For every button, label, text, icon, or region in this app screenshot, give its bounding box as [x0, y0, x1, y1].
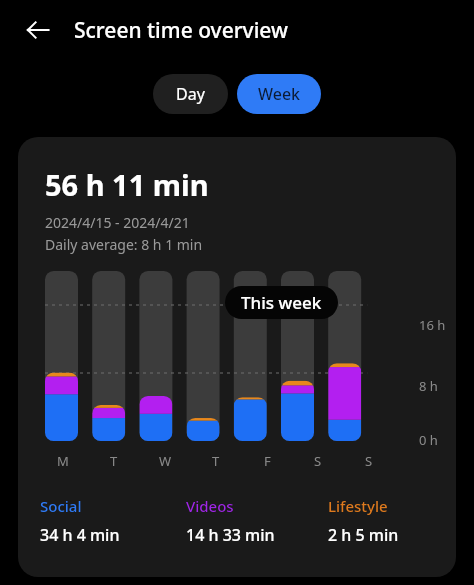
staticText: W: [159, 452, 172, 470]
staticText: 8 h: [419, 377, 438, 395]
staticText: S: [314, 452, 322, 470]
staticText: Daily average: 8 h 1 min: [45, 235, 203, 254]
staticText: F: [264, 452, 271, 470]
staticText: T: [212, 452, 220, 470]
staticText: S: [365, 452, 373, 470]
staticText: Screen time overview: [74, 16, 288, 45]
button[interactable]: Day: [153, 74, 228, 114]
staticText: 2 h 5 min: [328, 524, 399, 546]
button[interactable]: Week: [237, 74, 321, 114]
staticText: Week: [258, 83, 301, 105]
button[interactable]: Lifestyle: [328, 496, 448, 546]
staticText: 56 h 11 min: [45, 165, 209, 204]
staticText: Lifestyle: [328, 496, 388, 516]
button[interactable]: 56 h 11 min: [18, 137, 456, 577]
staticText: Videos: [186, 496, 234, 516]
staticText: 2024/4/15 - 2024/4/21: [45, 213, 190, 232]
staticText: 34 h 4 min: [40, 524, 120, 546]
staticText: This week: [241, 291, 322, 314]
staticText: Social: [40, 496, 82, 516]
button[interactable]: Social: [40, 496, 186, 546]
button[interactable]: Videos: [186, 496, 328, 546]
staticText: 0 h: [419, 431, 438, 449]
staticText: 14 h 33 min: [186, 524, 275, 546]
staticText: M: [57, 452, 69, 470]
staticText: 16 h: [419, 316, 446, 334]
button[interactable]: Back: [16, 8, 60, 52]
staticText: T: [110, 452, 118, 470]
staticText: Day: [176, 83, 205, 105]
